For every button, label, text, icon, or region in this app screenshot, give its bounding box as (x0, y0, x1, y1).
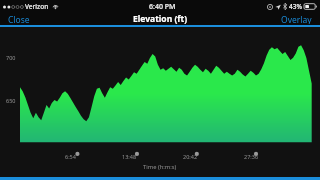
button[interactable]: Overlay (273, 13, 320, 25)
button[interactable]: Close (0, 13, 38, 25)
staticText: Elevation (ft) (133, 13, 188, 25)
staticText: 13:48 (122, 153, 137, 160)
staticText: 6:40 PM (149, 2, 176, 12)
staticText: 700 (6, 54, 16, 61)
staticText: 20:42 (183, 153, 198, 160)
staticText: Verizon (25, 2, 49, 11)
staticText: Close (8, 14, 30, 24)
staticText: Time (h:m:s) (143, 163, 177, 171)
staticText: 6:54 (65, 153, 76, 160)
staticText: 43% (289, 2, 302, 11)
staticText: 650 (6, 97, 16, 104)
staticText: Overlay (281, 14, 312, 24)
staticText: 27:36 (244, 153, 259, 160)
other: Elevation chart (0, 27, 320, 177)
